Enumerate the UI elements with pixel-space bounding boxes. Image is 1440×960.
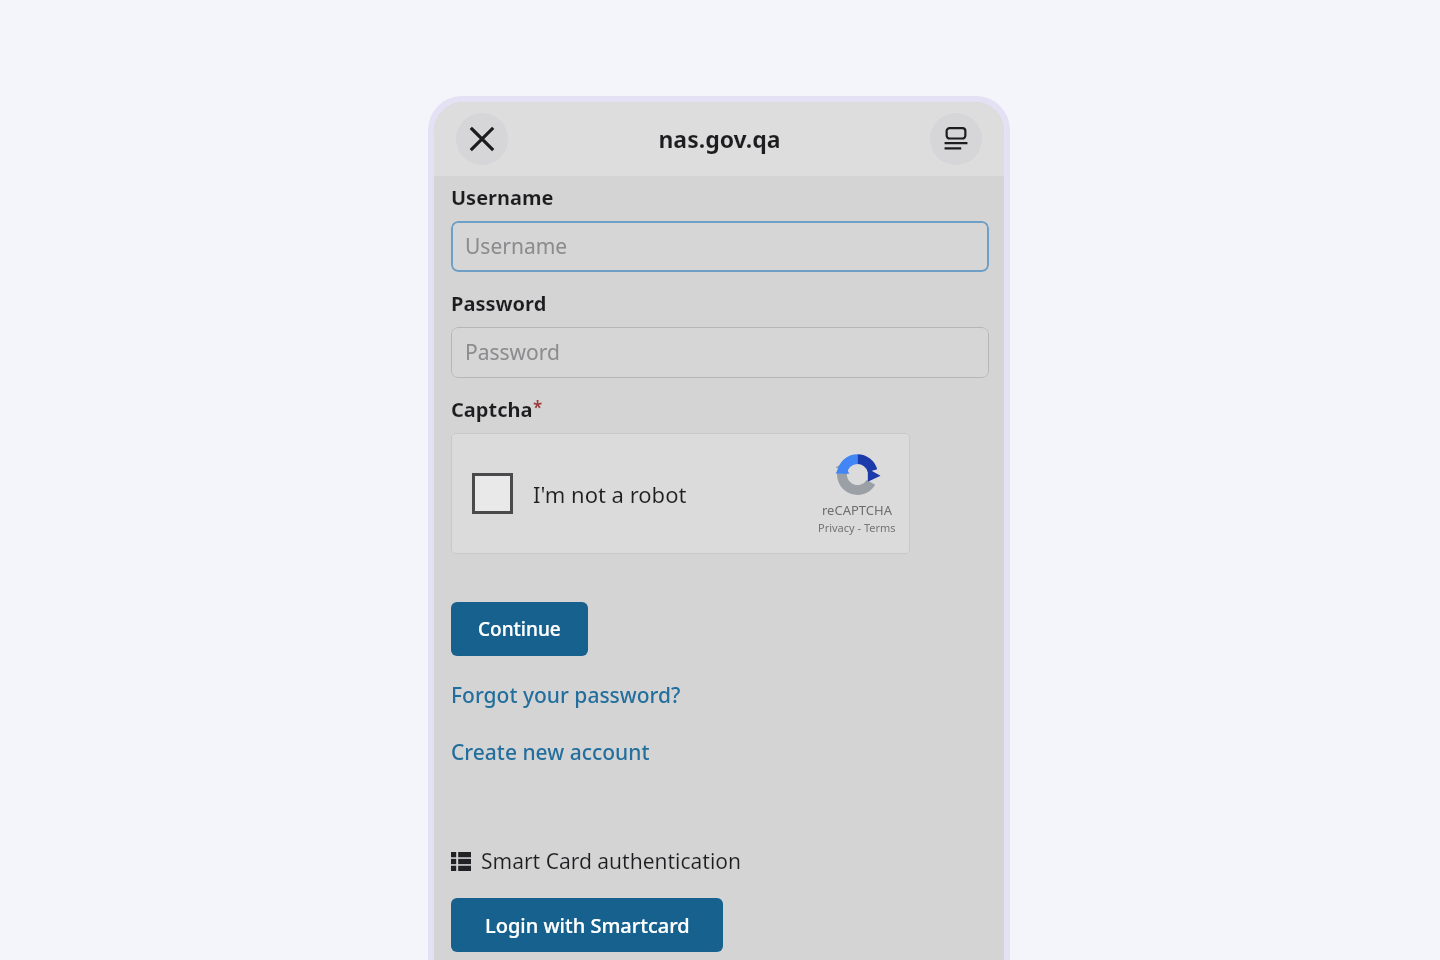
staticText: Forgot your password? bbox=[451, 681, 681, 710]
button[interactable]: Username bbox=[451, 221, 989, 272]
button[interactable]: Login with Smartcard bbox=[451, 898, 723, 952]
staticText: Login with Smartcard bbox=[485, 912, 690, 939]
button[interactable]: Continue bbox=[451, 602, 588, 656]
staticText: Continue bbox=[478, 616, 561, 642]
staticText: reCAPTCHA bbox=[822, 501, 892, 519]
button[interactable]: Forgot your password? bbox=[451, 681, 681, 710]
staticText: I'm not a robot bbox=[533, 479, 687, 509]
staticText: Smart Card authentication bbox=[481, 847, 742, 876]
staticText: Username bbox=[451, 184, 554, 211]
staticText: Password bbox=[451, 290, 547, 317]
staticText: Privacy - Terms bbox=[818, 520, 896, 535]
staticText: Password bbox=[465, 338, 560, 367]
staticText: * bbox=[533, 396, 543, 419]
staticText: nas.gov.qa bbox=[658, 123, 781, 154]
button[interactable]: Reader view bbox=[930, 113, 982, 165]
staticText: Captcha bbox=[451, 396, 533, 423]
button[interactable]: I'm not a robot checkbox bbox=[472, 473, 513, 514]
staticText: Username bbox=[465, 232, 568, 261]
button[interactable]: Create new account bbox=[451, 738, 650, 767]
staticText: Create new account bbox=[451, 738, 650, 767]
button[interactable]: Password bbox=[451, 327, 989, 378]
button[interactable]: Close bbox=[456, 113, 508, 165]
